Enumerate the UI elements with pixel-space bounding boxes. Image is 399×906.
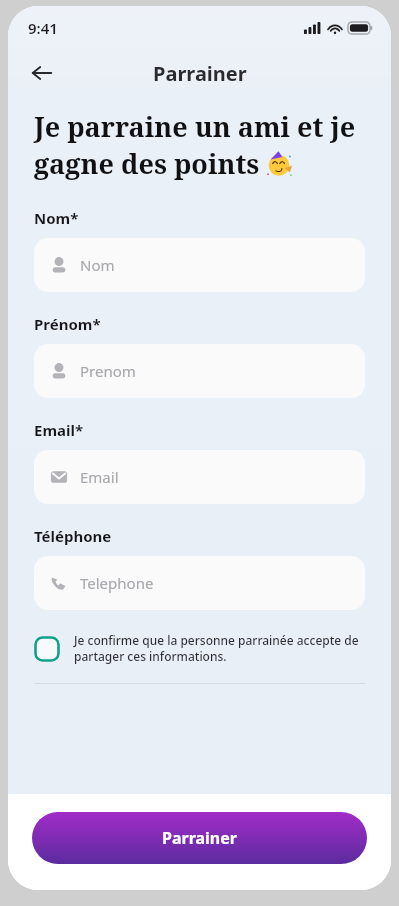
staticText: Prénom* (34, 314, 101, 334)
button[interactable]: Prenom (34, 344, 365, 398)
staticText: Parrainer (153, 60, 247, 87)
staticText: 9:41 (28, 18, 58, 38)
staticText: Je confirme que la personne parrainée ac… (74, 632, 365, 665)
staticText: Email (80, 467, 119, 487)
button[interactable]: Nom (34, 238, 365, 292)
staticText: Téléphone (34, 526, 112, 546)
staticText: Email* (34, 420, 84, 440)
staticText: Prenom (80, 361, 136, 381)
button[interactable]: Email (34, 450, 365, 504)
staticText: Parrainer (162, 827, 237, 849)
staticText: Nom* (34, 208, 79, 228)
button[interactable]: Je confirme que la personne parrainée ac… (34, 632, 365, 665)
button[interactable]: Telephone (34, 556, 365, 610)
button[interactable]: Parrainer (32, 812, 367, 864)
staticText: Telephone (80, 573, 154, 593)
staticText: Je parraine un ami et je (34, 108, 356, 145)
staticText: gagne des points (34, 145, 260, 182)
button[interactable]: Back (20, 51, 64, 95)
staticText: Nom (80, 255, 115, 275)
